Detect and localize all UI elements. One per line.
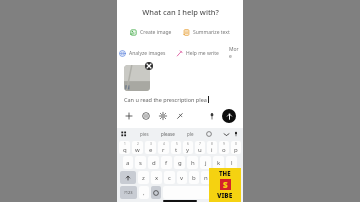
staticText: Can u read the prescription plea xyxy=(124,96,207,103)
staticText: z xyxy=(142,174,145,182)
button[interactable]: ?123 xyxy=(120,186,137,199)
staticText: VIBE xyxy=(217,191,233,200)
staticText: ?123 xyxy=(124,190,133,195)
staticText: 9 xyxy=(223,142,225,146)
staticText: a xyxy=(126,159,130,167)
staticText: m xyxy=(215,174,221,182)
button[interactable]: 3 xyxy=(145,141,156,154)
staticText: Create image xyxy=(140,29,172,36)
staticText: b xyxy=(192,174,196,182)
staticText: Help me write xyxy=(186,50,219,57)
staticText: , xyxy=(143,189,145,197)
staticText: n xyxy=(204,174,208,182)
staticText: 2 xyxy=(137,142,139,146)
button[interactable]: l xyxy=(226,156,237,169)
button[interactable]: Help me write xyxy=(174,48,221,59)
staticText: w xyxy=(135,146,140,154)
button[interactable]: 2 xyxy=(132,141,143,154)
button[interactable]: x xyxy=(151,171,162,184)
button[interactable]: Attach xyxy=(175,111,185,121)
button[interactable] xyxy=(224,186,240,199)
button[interactable]: 9 xyxy=(219,141,229,154)
button[interactable]: b xyxy=(189,171,199,184)
staticText: 1 xyxy=(124,142,126,146)
staticText: 3 xyxy=(150,142,152,146)
button[interactable] xyxy=(163,186,210,199)
button[interactable]: Analyze images xyxy=(117,48,168,59)
staticText: ple xyxy=(187,131,194,137)
button[interactable]: a xyxy=(123,156,133,169)
staticText: i xyxy=(211,146,213,154)
button[interactable]: j xyxy=(200,156,211,169)
button[interactable]: 4 xyxy=(158,141,169,154)
staticText: t xyxy=(175,146,178,154)
button[interactable]: Settings xyxy=(158,111,168,121)
button[interactable]: s xyxy=(135,156,146,169)
staticText: e xyxy=(149,146,153,154)
button[interactable]: Backspace xyxy=(225,171,240,184)
button[interactable]: 7 xyxy=(195,141,205,154)
staticText: . xyxy=(216,189,218,197)
button[interactable]: f xyxy=(161,156,172,169)
button[interactable]: , xyxy=(139,186,149,199)
staticText: f xyxy=(165,159,168,167)
button[interactable]: 1 xyxy=(119,141,130,154)
button[interactable]: Emoji xyxy=(206,131,212,137)
button[interactable]: 5 xyxy=(171,141,181,154)
button[interactable]: Voice xyxy=(207,111,217,121)
button[interactable]: Summarize text xyxy=(181,27,232,38)
button[interactable]: 8 xyxy=(207,141,217,154)
staticText: 7 xyxy=(199,142,201,146)
staticText: c xyxy=(168,174,171,182)
staticText: y xyxy=(186,146,190,154)
staticText: j xyxy=(205,159,207,167)
button[interactable]: Send xyxy=(222,109,236,123)
button[interactable]: v xyxy=(177,171,187,184)
staticText: d xyxy=(152,159,156,167)
staticText: Analyze images xyxy=(129,50,166,57)
button[interactable]: h xyxy=(187,156,198,169)
button[interactable]: Voice input xyxy=(233,131,239,137)
staticText: s xyxy=(139,159,142,167)
button[interactable]: k xyxy=(213,156,224,169)
button[interactable]: Emoji xyxy=(151,186,161,199)
staticText: 5 xyxy=(176,142,178,146)
button[interactable]: Keyboard menu xyxy=(121,131,127,137)
staticText: q xyxy=(123,146,127,154)
button[interactable]: 0 xyxy=(231,141,241,154)
staticText: please xyxy=(161,131,175,137)
staticText: l xyxy=(231,159,233,167)
staticText: 4 xyxy=(163,142,165,146)
staticText: r xyxy=(162,146,165,154)
button[interactable]: Create image xyxy=(128,27,174,38)
staticText: k xyxy=(217,159,221,167)
staticText: THE xyxy=(219,170,231,178)
button[interactable]: z xyxy=(138,171,149,184)
button[interactable]: d xyxy=(148,156,159,169)
staticText: v xyxy=(180,174,184,182)
staticText: x xyxy=(155,174,159,182)
button[interactable]: c xyxy=(164,171,175,184)
staticText: h xyxy=(191,159,195,167)
staticText: g xyxy=(178,159,182,167)
button[interactable]: More xyxy=(227,44,243,62)
button[interactable]: Add xyxy=(124,111,134,121)
button[interactable]: 6 xyxy=(183,141,193,154)
staticText: Summarize text xyxy=(193,29,230,36)
button[interactable]: Remove attachment xyxy=(145,62,153,70)
button[interactable]: . xyxy=(212,186,222,199)
staticText: pies xyxy=(140,131,149,137)
staticText: 8 xyxy=(211,142,213,146)
button[interactable]: Shift xyxy=(120,171,136,184)
staticText: u xyxy=(198,146,202,154)
staticText: 0 xyxy=(235,142,237,146)
staticText: S xyxy=(223,179,228,190)
staticText: What can I help with? xyxy=(142,7,219,17)
staticText: 6 xyxy=(187,142,189,146)
staticText: p xyxy=(234,146,238,154)
button[interactable]: g xyxy=(174,156,185,169)
button[interactable]: Tools xyxy=(141,111,151,121)
button[interactable]: m xyxy=(213,171,223,184)
staticText: o xyxy=(222,146,226,154)
button[interactable]: n xyxy=(201,171,211,184)
